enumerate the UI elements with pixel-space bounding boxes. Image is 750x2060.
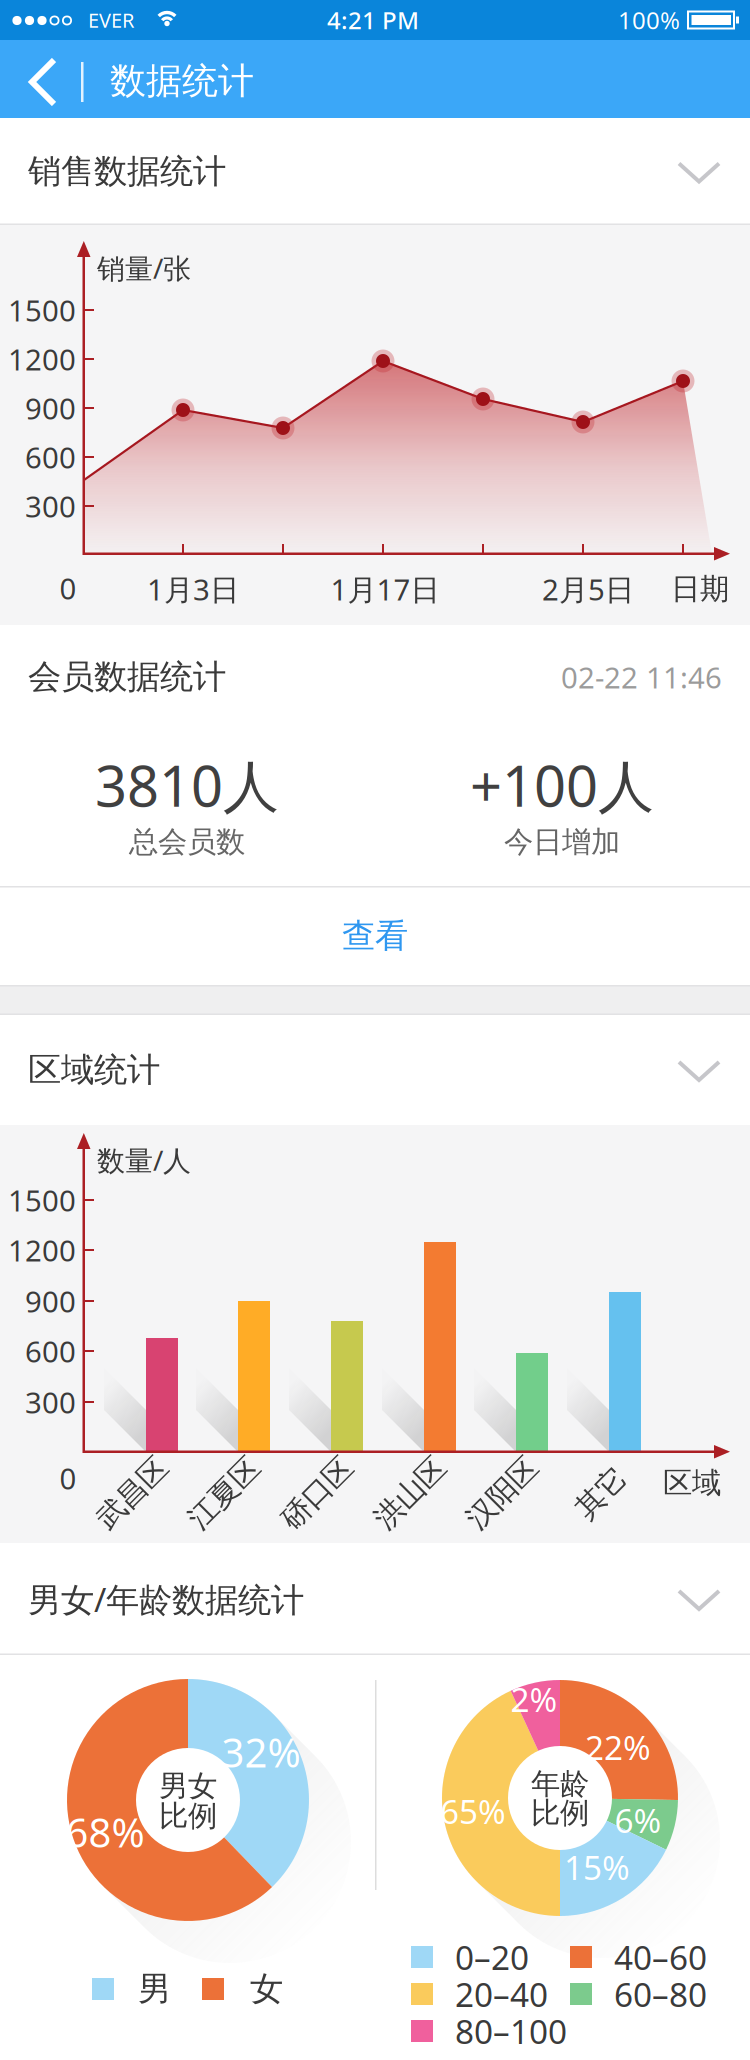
staticText: 32% bbox=[221, 1725, 300, 1778]
staticText: 300 bbox=[25, 486, 76, 525]
staticText: 22% bbox=[585, 1725, 651, 1769]
staticText: 总会员数 bbox=[129, 824, 245, 860]
staticText: 300 bbox=[25, 1382, 76, 1421]
button[interactable]: Expand 男女/年龄数据统计 bbox=[0, 1543, 750, 1655]
staticText: 6% bbox=[614, 1798, 661, 1842]
staticText: +100人 bbox=[470, 748, 654, 822]
staticText: 销售数据统计 bbox=[28, 151, 226, 192]
staticText: 0 bbox=[59, 1458, 76, 1497]
staticText: 80–100 bbox=[455, 2009, 567, 2053]
staticText: 900 bbox=[25, 1281, 76, 1320]
staticText: 日期 bbox=[671, 571, 729, 607]
staticText: 4:21 PM bbox=[327, 4, 419, 36]
staticText: 数据统计 bbox=[110, 59, 254, 103]
staticText: 硚口区 bbox=[273, 1475, 360, 1511]
staticText: 销量/张 bbox=[97, 249, 191, 287]
staticText: 男女/年龄数据统计 bbox=[28, 1577, 304, 1621]
staticText: 武昌区 bbox=[88, 1475, 175, 1511]
button[interactable]: Back bbox=[0, 40, 82, 118]
staticText: EVER bbox=[88, 7, 134, 33]
button[interactable]: Expand 区域统计 bbox=[0, 1015, 750, 1125]
staticText: 600 bbox=[25, 437, 76, 476]
staticText: 15% bbox=[564, 1845, 630, 1889]
staticText: 区域统计 bbox=[28, 1049, 160, 1090]
staticText: 男女 bbox=[159, 1768, 217, 1804]
staticText: 区域 bbox=[663, 1465, 721, 1501]
staticText: 600 bbox=[25, 1331, 76, 1370]
staticText: 1200 bbox=[8, 339, 76, 378]
staticText: 20–40 bbox=[455, 1972, 548, 2016]
staticText: 其它 bbox=[572, 1475, 630, 1511]
staticText: 2% bbox=[510, 1677, 557, 1721]
staticText: 男 bbox=[138, 1968, 171, 2009]
staticText: 1500 bbox=[8, 1180, 76, 1219]
button[interactable]: 查看 bbox=[0, 888, 750, 984]
staticText: 数量/人 bbox=[97, 1141, 191, 1179]
staticText: 60–80 bbox=[614, 1972, 707, 2016]
staticText: 洪山区 bbox=[366, 1475, 453, 1511]
staticText: 0 bbox=[59, 568, 76, 607]
staticText: 0–20 bbox=[455, 1935, 529, 1979]
staticText: 年龄 bbox=[531, 1766, 589, 1802]
staticText: 查看 bbox=[342, 915, 408, 956]
staticText: 65% bbox=[440, 1789, 506, 1833]
staticText: 1200 bbox=[8, 1230, 76, 1269]
staticText: 女 bbox=[250, 1968, 283, 2009]
staticText: 比例 bbox=[531, 1795, 589, 1831]
staticText: 2月5日 bbox=[542, 569, 634, 608]
staticText: 02-22 11:46 bbox=[561, 657, 722, 696]
button[interactable]: Expand 销售数据统计 bbox=[0, 118, 750, 225]
staticText: 江夏区 bbox=[180, 1475, 267, 1511]
staticText: 68% bbox=[65, 1805, 144, 1858]
staticText: 900 bbox=[25, 388, 76, 427]
staticText: 1月3日 bbox=[147, 569, 239, 608]
staticText: 1月17日 bbox=[330, 569, 439, 608]
staticText: 今日增加 bbox=[504, 824, 620, 860]
staticText: 100% bbox=[618, 4, 680, 36]
staticText: 1500 bbox=[8, 290, 76, 329]
staticText: 比例 bbox=[159, 1798, 217, 1834]
staticText: 会员数据统计 bbox=[28, 656, 226, 697]
staticText: 3810人 bbox=[95, 748, 279, 822]
staticText: 40–60 bbox=[614, 1935, 707, 1979]
staticText: 汉阳区 bbox=[458, 1475, 545, 1511]
